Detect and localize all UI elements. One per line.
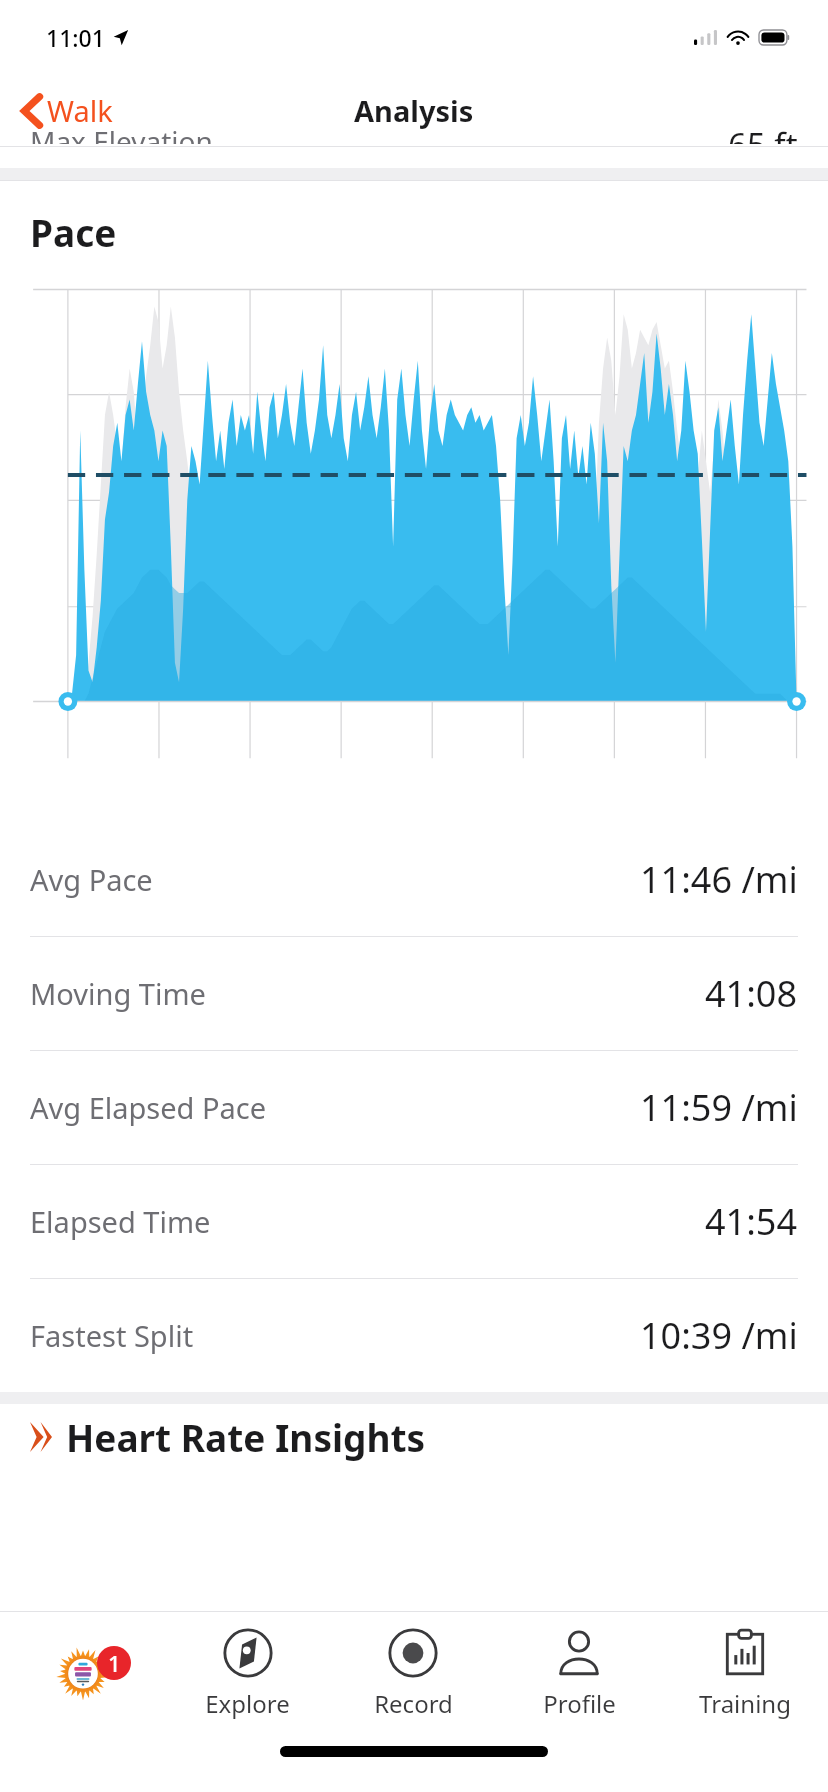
staticText: 11:01: [46, 22, 105, 53]
staticText: Pace: [30, 207, 117, 257]
staticText: Analysis: [354, 91, 474, 130]
staticText: Moving Time: [30, 974, 206, 1013]
button[interactable]: Training: [662, 1612, 828, 1732]
staticText: 65 ft: [728, 122, 798, 144]
staticText: 41:54: [705, 1197, 798, 1246]
staticText: 1: [108, 1648, 121, 1678]
button[interactable]: Profile: [496, 1612, 662, 1732]
staticText: Explore: [205, 1687, 290, 1720]
staticText: Fastest Split: [30, 1316, 194, 1355]
button[interactable]: Moving Time: [0, 937, 828, 1050]
button[interactable]: Max Elevation: [0, 146, 828, 168]
button[interactable]: Explore: [165, 1612, 330, 1732]
staticText: 11:46 /mi: [640, 855, 798, 904]
button[interactable]: Elapsed Time: [0, 1165, 828, 1278]
staticText: 11:59 /mi: [640, 1083, 798, 1132]
button[interactable]: Walk: [0, 83, 127, 138]
staticText: Walk: [47, 91, 113, 130]
button[interactable]: Avg Elapsed Pace: [0, 1051, 828, 1164]
staticText: 41:08: [705, 969, 798, 1018]
button[interactable]: Record: [330, 1612, 496, 1732]
staticText: 10:39 /mi: [640, 1311, 798, 1360]
button[interactable]: Fastest Split: [0, 1279, 828, 1392]
staticText: Max Elevation: [30, 122, 213, 144]
staticText: Avg Pace: [30, 860, 153, 899]
staticText: Profile: [543, 1687, 616, 1720]
staticText: Avg Elapsed Pace: [30, 1088, 267, 1127]
staticText: Record: [374, 1687, 453, 1720]
button[interactable]: Heart Rate Insights: [0, 1404, 828, 1470]
staticText: Training: [699, 1687, 791, 1720]
staticText: Heart Rate Insights: [66, 1412, 426, 1462]
staticText: Elapsed Time: [30, 1202, 211, 1241]
button[interactable]: Avg Pace: [0, 823, 828, 936]
button[interactable]: 1: [0, 1612, 165, 1732]
